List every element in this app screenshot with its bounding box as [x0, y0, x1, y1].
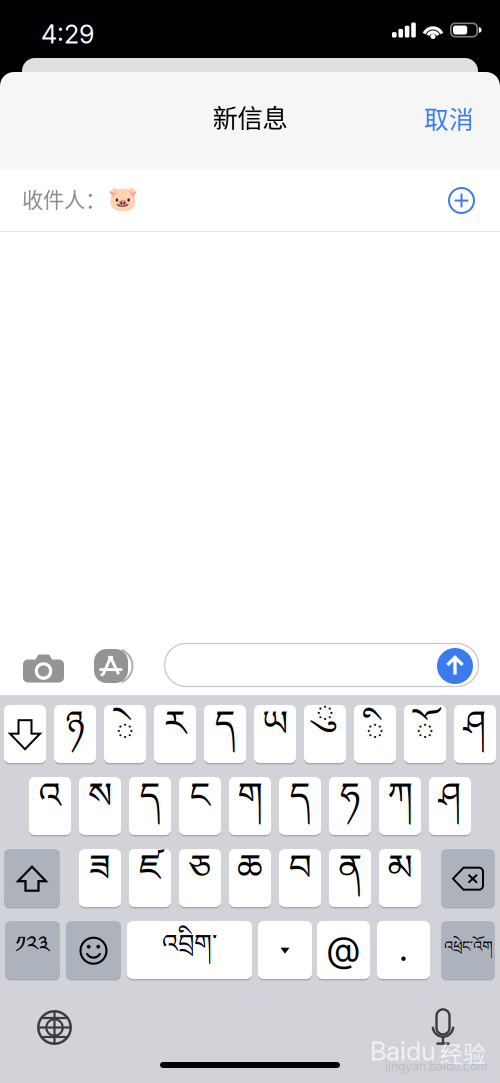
button[interactable]: ེ [104, 705, 146, 764]
button[interactable]: ཀ [379, 777, 421, 836]
button[interactable] [441, 849, 495, 908]
button[interactable]: ག [229, 777, 271, 836]
button[interactable]: མ [379, 849, 421, 908]
button[interactable]: Add recipient [448, 187, 475, 214]
staticText: ཟ [89, 827, 111, 928]
staticText: ེ [115, 693, 135, 794]
staticText: ཤ [438, 755, 461, 856]
button[interactable]: འཕྲེང་འོག [441, 921, 495, 980]
staticText: ཧ [340, 755, 360, 856]
staticText: ༡༢༣ [15, 919, 50, 983]
button[interactable] [66, 921, 121, 980]
staticText: ད [139, 755, 160, 856]
staticText: ག [237, 755, 262, 856]
button[interactable] [377, 921, 430, 980]
staticText: 收件人： [22, 183, 106, 214]
button[interactable]: ༡༢༣ [5, 921, 60, 980]
staticText: 4:29 [41, 19, 94, 50]
staticText: ཀ [387, 755, 412, 856]
button[interactable]: ད [279, 777, 321, 836]
button[interactable]: ར [154, 705, 196, 764]
button[interactable]: ི [354, 705, 396, 764]
button[interactable]: ཟ [79, 849, 121, 908]
button[interactable]: 取消 [412, 96, 486, 140]
staticText: འབྲིག་ [162, 915, 217, 986]
button[interactable]: ད [204, 705, 246, 764]
staticText: @ [326, 929, 360, 971]
button[interactable]: Apps [94, 649, 136, 683]
button[interactable] [258, 921, 312, 980]
staticText: ཅ [188, 827, 211, 928]
button[interactable]: ཛ [129, 849, 171, 908]
staticText: ར [164, 683, 186, 784]
button[interactable] [4, 849, 60, 908]
staticText: 🐷 [108, 184, 138, 212]
button[interactable]: ཤ [454, 705, 496, 764]
button[interactable]: འ [29, 777, 71, 836]
button[interactable]: ན [329, 849, 371, 908]
button[interactable]: ང [179, 777, 221, 836]
button[interactable]: ཤ [429, 777, 471, 836]
button[interactable]: Dictate [430, 1008, 456, 1046]
staticText: ོ [415, 693, 435, 794]
staticText: བ [288, 827, 311, 928]
staticText: ཛ [139, 827, 161, 928]
staticText: Baidu [370, 1036, 436, 1067]
button[interactable]: ུ [304, 705, 346, 764]
staticText: འཕྲེང་འོག [444, 930, 492, 971]
staticText: ཆ [237, 827, 263, 928]
staticText: ཡ [262, 683, 288, 784]
staticText: ི [365, 693, 385, 794]
staticText: ན [338, 827, 362, 928]
button[interactable]: ས [79, 777, 121, 836]
button[interactable]: ཡ [254, 705, 296, 764]
staticText: ས [88, 755, 112, 856]
staticText: ད [214, 683, 235, 784]
staticText: ཤ [463, 683, 486, 784]
staticText: jingyan.baidu.com [385, 1059, 488, 1073]
button[interactable]: @ [317, 921, 370, 980]
staticText: འ [38, 755, 61, 856]
button[interactable]: ཉ [54, 705, 96, 764]
button[interactable]: བ [279, 849, 321, 908]
staticText: ད [289, 755, 310, 856]
button[interactable]: Camera [23, 654, 64, 683]
button[interactable]: ཧ [329, 777, 371, 836]
staticText: མ [387, 827, 412, 928]
staticText: ང [189, 755, 210, 856]
staticText: ཉ [65, 683, 84, 784]
button[interactable]: ད [129, 777, 171, 836]
button[interactable]: ཆ [229, 849, 271, 908]
button[interactable]: ོ [404, 705, 446, 764]
staticText: 取消 [424, 100, 474, 136]
button[interactable]: Switch keyboard [37, 1010, 72, 1045]
button[interactable] [4, 705, 46, 764]
button[interactable]: ཅ [179, 849, 221, 908]
staticText: ུ [315, 675, 335, 776]
staticText: 新信息 [212, 98, 287, 135]
button[interactable]: འབྲིག་ [127, 921, 252, 980]
button[interactable]: Send [437, 648, 473, 684]
staticText: 经验 [440, 1036, 486, 1069]
